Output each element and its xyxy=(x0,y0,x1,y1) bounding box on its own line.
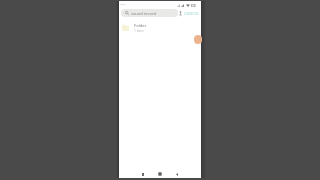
button[interactable]: CANCEL xyxy=(183,9,200,17)
staticText: sound record xyxy=(131,11,156,16)
button[interactable]: Recents xyxy=(135,166,151,180)
staticText: 1 item xyxy=(134,29,144,33)
button[interactable]: Folder xyxy=(119,21,201,35)
button[interactable]: Voice search xyxy=(177,9,184,17)
button[interactable]: Scroll handle xyxy=(194,35,202,44)
button[interactable]: Home xyxy=(152,166,168,180)
staticText: CANCEL xyxy=(184,11,200,16)
button[interactable]: sound record xyxy=(121,9,178,17)
staticText: Folder xyxy=(134,23,147,29)
button[interactable]: Back xyxy=(169,166,185,180)
